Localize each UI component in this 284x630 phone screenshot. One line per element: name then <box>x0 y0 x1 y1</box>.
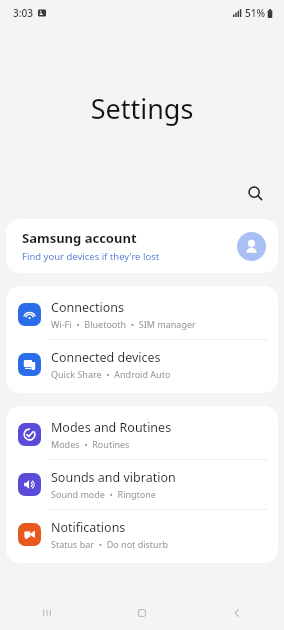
button[interactable]: Samsung account <box>6 219 278 273</box>
staticText: Samsung account <box>22 229 137 247</box>
button[interactable]: Notifications <box>6 510 278 559</box>
staticText: Find your devices if they're lost <box>22 250 160 263</box>
staticText: Modes and Routines <box>51 419 172 436</box>
button[interactable]: Modes and Routines <box>6 410 278 459</box>
button[interactable]: Search <box>238 176 272 210</box>
button[interactable]: Connections <box>6 290 278 339</box>
staticText: Status bar • Do not disturb <box>51 538 168 550</box>
staticText: Quick Share • Android Auto <box>51 368 171 380</box>
staticText: Connections <box>51 299 124 316</box>
staticText: 51% <box>245 6 265 20</box>
staticText: Settings <box>0 90 284 127</box>
staticText: Notifications <box>51 519 126 536</box>
staticText: Modes • Routines <box>51 438 130 450</box>
staticText: Connected devices <box>51 349 161 366</box>
button[interactable]: Connected devices <box>6 340 278 389</box>
button[interactable]: Sounds and vibration <box>6 460 278 509</box>
button[interactable]: Home <box>94 596 189 630</box>
staticText: Wi-Fi • Bluetooth • SIM manager <box>51 318 196 330</box>
staticText: Sound mode • Ringtone <box>51 488 156 500</box>
staticText: 3:03 <box>13 6 33 20</box>
button[interactable]: Recents <box>0 596 94 630</box>
staticText: Sounds and vibration <box>51 469 176 486</box>
